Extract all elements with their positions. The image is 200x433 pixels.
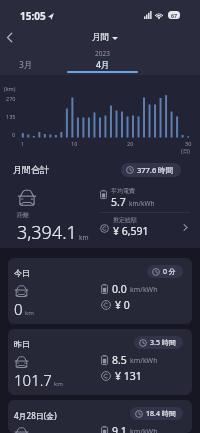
staticText: 15:05: [20, 9, 46, 23]
staticText: 今日: [14, 268, 30, 278]
staticText: 0: [14, 299, 23, 319]
button[interactable]: 2023: [67, 49, 138, 75]
staticText: 0.0: [112, 282, 127, 296]
staticText: 3,394.1: [17, 220, 77, 245]
button[interactable]: Back: [0, 26, 18, 49]
staticText: 4月28日(金): [14, 410, 57, 421]
staticText: km/kWh: [130, 356, 158, 366]
staticText: 9.1: [112, 424, 127, 433]
staticText: ¥ 131: [115, 369, 142, 383]
staticText: km: [79, 233, 89, 242]
staticText: km/kWh: [130, 427, 158, 433]
staticText: 1: [21, 140, 25, 147]
staticText: 平均電費: [111, 187, 135, 195]
button[interactable]: 今日: [8, 258, 192, 324]
staticText: (日): [181, 147, 190, 155]
staticText: 距離: [17, 211, 29, 219]
staticText: ¥ 6,591: [113, 224, 149, 238]
staticText: km: [54, 380, 63, 388]
staticText: 67: [171, 12, 178, 19]
button[interactable]: 推定総額: [100, 216, 190, 238]
staticText: 推定総額: [113, 216, 137, 224]
staticText: 昨日: [14, 339, 30, 349]
staticText: 30: [185, 140, 192, 147]
button[interactable]: 3月: [0, 49, 61, 75]
staticText: 18.4 時間: [146, 409, 176, 419]
staticText: km: [25, 309, 34, 317]
button[interactable]: 月間: [90, 32, 120, 43]
staticText: 135: [6, 113, 16, 120]
staticText: 377.6 時間: [137, 165, 174, 175]
button[interactable]: 昨日: [8, 329, 192, 395]
staticText: 270: [6, 95, 16, 102]
staticText: 5.7: [111, 195, 126, 209]
staticText: km/kWh: [130, 285, 158, 295]
staticText: 2023: [95, 49, 110, 58]
staticText: km/kWh: [129, 199, 155, 208]
staticText: 4月: [96, 59, 110, 71]
staticText: 8.5: [112, 353, 127, 367]
staticText: 10: [71, 140, 78, 147]
staticText: (km): [4, 85, 16, 92]
staticText: 0 分: [163, 267, 176, 277]
staticText: 3月: [19, 59, 33, 71]
staticText: 101.7: [14, 370, 52, 390]
staticText: 月間: [92, 32, 109, 43]
staticText: 月間合計: [13, 164, 49, 175]
button[interactable]: 377.6 時間: [121, 163, 181, 177]
staticText: 0: [12, 131, 16, 138]
staticText: 20: [127, 140, 134, 147]
staticText: 3.5 時間: [150, 338, 176, 348]
staticText: ¥ 0: [115, 298, 130, 312]
button[interactable]: 4月28日(金): [8, 400, 192, 433]
